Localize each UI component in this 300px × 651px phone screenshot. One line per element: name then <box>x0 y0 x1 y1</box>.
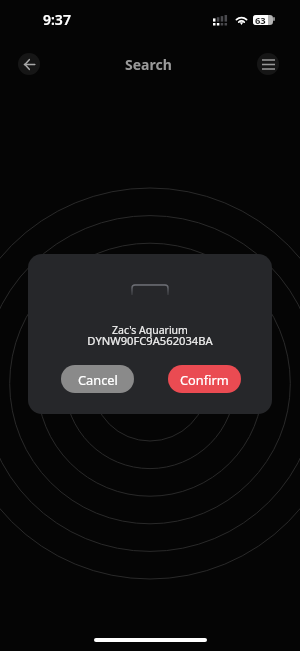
button[interactable]: Menu <box>257 53 279 75</box>
staticText: 63 <box>255 15 266 24</box>
staticText: Zac's Aquarium <box>112 323 188 337</box>
staticText: Search <box>125 55 172 74</box>
button[interactable]: Confirm <box>168 365 241 393</box>
staticText: 9:37 <box>43 10 71 29</box>
button[interactable]: Back <box>18 53 40 75</box>
staticText: Confirm <box>180 371 229 388</box>
staticText: Cancel <box>78 371 118 388</box>
staticText: DYNW90FC9A562034BA <box>87 333 213 348</box>
button[interactable]: Cancel <box>61 365 134 393</box>
